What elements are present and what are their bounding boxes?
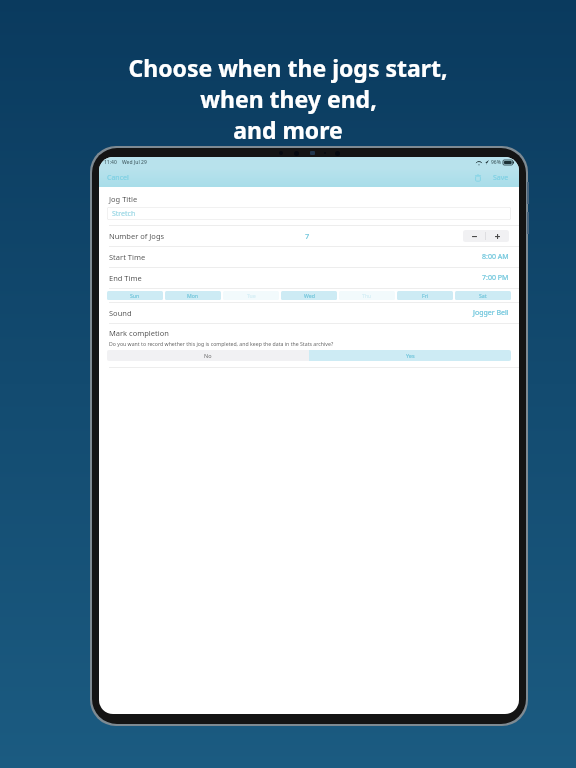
staticText: 96%: [491, 159, 501, 166]
staticText: 8:00 AM: [482, 252, 509, 262]
button[interactable]: Sat: [455, 291, 511, 300]
staticText: 11:40: [104, 159, 117, 166]
staticText: No: [204, 352, 212, 359]
staticText: Thu: [362, 292, 372, 299]
button[interactable]: Fri: [397, 291, 453, 300]
staticText: Start Time: [109, 252, 146, 262]
button[interactable]: Yes: [309, 350, 511, 361]
staticText: End Time: [109, 273, 142, 283]
staticText: Wed Jul 29: [122, 159, 147, 166]
button[interactable]: Start Time: [99, 247, 519, 267]
button[interactable]: Stretch: [107, 207, 511, 220]
staticText: Jogger Bell: [473, 308, 509, 318]
button[interactable]: Cancel: [99, 170, 137, 186]
button[interactable]: Mon: [165, 291, 221, 300]
staticText: Mon: [187, 292, 199, 299]
button[interactable]: Decrease: [463, 230, 485, 242]
button[interactable]: End Time: [99, 268, 519, 288]
button[interactable]: Increase: [486, 230, 509, 242]
staticText: Mark completion: [109, 328, 169, 338]
button[interactable]: Tue: [223, 291, 279, 300]
staticText: Sound: [109, 308, 132, 318]
button[interactable]: No: [107, 350, 309, 361]
staticText: Stretch: [112, 209, 136, 219]
button[interactable]: Number of Jogs: [99, 226, 519, 246]
staticText: 7:00 PM: [482, 273, 509, 283]
staticText: and more: [233, 114, 343, 145]
button[interactable]: Wed: [281, 291, 337, 300]
staticText: Tue: [247, 292, 256, 299]
staticText: Sun: [130, 292, 140, 299]
staticText: Do you want to record whether this jog i…: [109, 340, 334, 347]
staticText: Save: [493, 173, 509, 183]
staticText: Number of Jogs: [109, 231, 165, 241]
staticText: when they end,: [200, 83, 377, 114]
staticText: Wed: [304, 292, 315, 299]
staticText: Fri: [422, 292, 429, 299]
button[interactable]: Sound: [99, 303, 519, 323]
staticText: 7: [305, 231, 310, 241]
staticText: Sat: [479, 292, 487, 299]
button[interactable]: Save: [489, 170, 513, 186]
staticText: Jog Title: [109, 194, 138, 204]
staticText: Cancel: [107, 173, 129, 183]
button[interactable]: Thu: [339, 291, 395, 300]
staticText: Yes: [406, 352, 415, 359]
button[interactable]: Sun: [107, 291, 163, 300]
staticText: Choose when the jogs start,: [128, 52, 448, 83]
button[interactable]: Delete: [470, 170, 486, 186]
